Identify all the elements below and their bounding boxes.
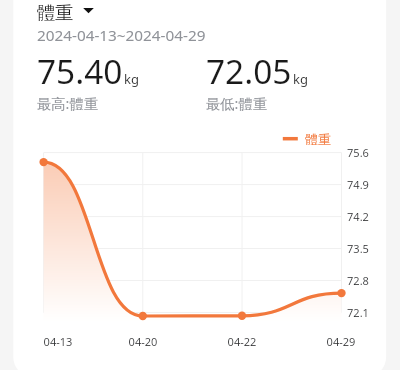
- staticText: 72.8: [347, 273, 369, 288]
- staticText: 72.1: [347, 305, 369, 320]
- staticText: 72.05: [206, 48, 292, 93]
- staticText: 04-22: [222, 334, 262, 349]
- staticText: 體重: [37, 1, 74, 24]
- staticText: 73.5: [347, 241, 369, 256]
- button[interactable]: 體重 選擇指標: [30, 0, 98, 24]
- staticText: 體重: [305, 131, 331, 147]
- button[interactable]: 體重: [279, 128, 335, 148]
- staticText: 74.9: [347, 177, 369, 192]
- staticText: 最高:體重: [37, 94, 99, 114]
- staticText: 04-29: [321, 334, 361, 349]
- staticText: 04-20: [123, 334, 163, 349]
- staticText: 04-13: [38, 334, 78, 349]
- staticText: kg: [293, 70, 308, 88]
- staticText: 75.6: [347, 145, 369, 160]
- staticText: 75.40: [37, 48, 123, 93]
- staticText: kg: [124, 70, 139, 88]
- staticText: 2024-04-13~2024-04-29: [37, 25, 206, 46]
- staticText: 最低:體重: [206, 94, 268, 114]
- staticText: 74.2: [347, 209, 369, 224]
